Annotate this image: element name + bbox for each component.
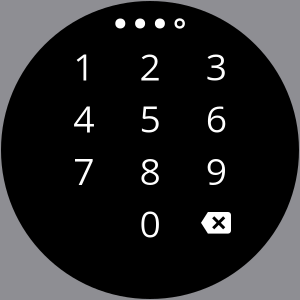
staticText: 6 (206, 92, 227, 143)
button[interactable]: 0 (118, 198, 182, 248)
staticText: 0 (139, 197, 160, 248)
staticText: 5 (139, 92, 160, 143)
button[interactable]: 1 (52, 41, 116, 91)
button[interactable]: Delete (184, 198, 248, 248)
staticText: 3 (206, 40, 227, 91)
button[interactable]: 4 (52, 93, 116, 143)
staticText: 8 (139, 145, 160, 196)
button[interactable]: 5 (118, 93, 182, 143)
staticText: 4 (73, 92, 94, 143)
button[interactable]: 2 (118, 41, 182, 91)
staticText: 2 (139, 40, 160, 91)
staticText: 7 (73, 145, 94, 196)
staticText: 1 (73, 40, 94, 91)
button[interactable]: 9 (184, 145, 248, 195)
staticText: 9 (206, 145, 227, 196)
button[interactable]: 6 (184, 93, 248, 143)
button[interactable]: 8 (118, 145, 182, 195)
button[interactable]: 3 (184, 41, 248, 91)
button[interactable]: 7 (52, 145, 116, 195)
